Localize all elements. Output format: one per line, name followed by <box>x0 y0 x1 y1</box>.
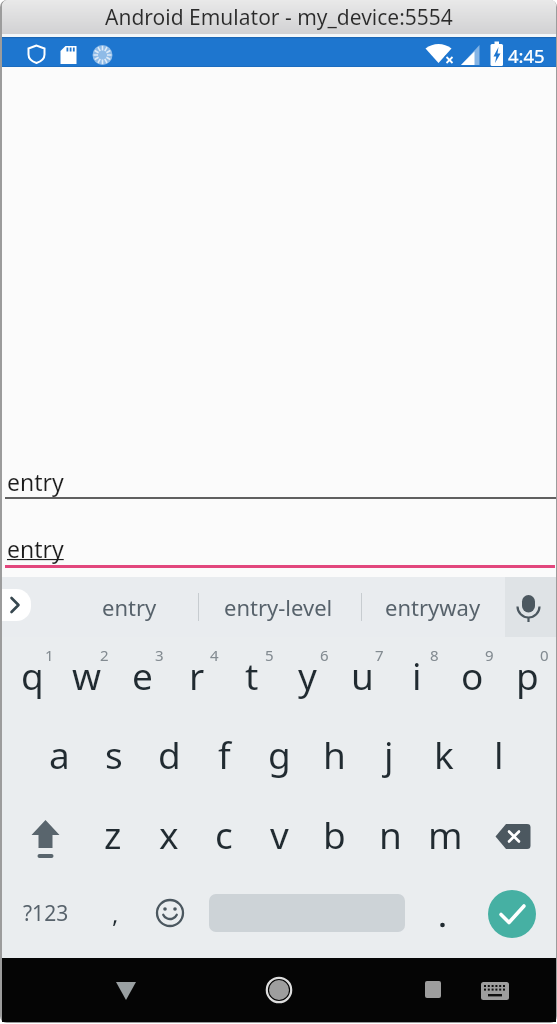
button[interactable]: e <box>115 637 169 713</box>
button[interactable]: m <box>418 796 472 872</box>
staticText: entry <box>7 533 64 564</box>
button[interactable]: k <box>417 716 471 792</box>
button[interactable]: b <box>307 796 361 872</box>
staticText: x <box>159 809 179 859</box>
button[interactable] <box>485 800 541 876</box>
staticText: s <box>105 729 123 779</box>
staticText: 3 <box>155 645 164 665</box>
staticText: l <box>494 729 504 779</box>
staticText: a <box>49 729 70 779</box>
staticText: f <box>218 729 231 779</box>
button[interactable] <box>259 970 299 1010</box>
button[interactable]: entry-level <box>198 583 358 631</box>
button[interactable]: c <box>197 796 251 872</box>
button[interactable]: d <box>142 716 196 792</box>
staticText: v <box>270 809 289 859</box>
button[interactable]: u <box>335 637 389 713</box>
button[interactable]: w <box>60 637 114 713</box>
button[interactable]: t <box>225 637 279 713</box>
staticText: 4:45 <box>508 43 545 68</box>
button[interactable] <box>413 970 453 1010</box>
staticText: 8 <box>430 645 439 665</box>
staticText: y <box>298 650 317 700</box>
staticText: t <box>245 650 259 700</box>
staticText: 7 <box>375 645 384 665</box>
staticText: h <box>323 729 346 779</box>
button[interactable]: z <box>86 796 140 872</box>
staticText: 0 <box>540 645 549 665</box>
button[interactable]: x <box>142 796 196 872</box>
button[interactable] <box>475 970 515 1010</box>
button[interactable]: , <box>95 893 135 933</box>
staticText: entry <box>7 466 64 497</box>
button[interactable]: g <box>252 716 306 792</box>
button[interactable]: v <box>252 796 306 872</box>
staticText: z <box>104 809 122 859</box>
staticText: 6 <box>320 645 329 665</box>
button[interactable]: l <box>472 716 526 792</box>
staticText: 2 <box>100 645 109 665</box>
button[interactable]: q <box>5 637 59 713</box>
staticText: g <box>268 729 291 779</box>
button[interactable]: r <box>170 637 224 713</box>
button[interactable]: s <box>87 716 141 792</box>
staticText: q <box>21 650 44 700</box>
staticText: w <box>72 650 102 700</box>
staticText: d <box>158 729 181 779</box>
button[interactable] <box>2 589 31 621</box>
button[interactable]: h <box>307 716 361 792</box>
staticText: e <box>132 650 153 700</box>
staticText: j <box>384 729 394 779</box>
button[interactable] <box>18 800 74 876</box>
button[interactable]: ?123 <box>11 893 81 933</box>
staticText: n <box>379 809 402 859</box>
button[interactable]: o <box>445 637 499 713</box>
staticText: 4 <box>210 645 219 665</box>
staticText: o <box>461 650 484 700</box>
button[interactable] <box>150 893 190 933</box>
staticText: b <box>323 809 346 859</box>
staticText: entry-level <box>224 592 333 622</box>
staticText: ?123 <box>23 899 69 928</box>
staticText: p <box>516 650 539 700</box>
button[interactable]: n <box>363 796 417 872</box>
button[interactable] <box>106 970 146 1010</box>
staticText: entryway <box>385 592 481 622</box>
button[interactable] <box>488 890 536 938</box>
staticText: , <box>112 897 119 930</box>
staticText: Android Emulator - my_device:5554 <box>105 3 453 32</box>
staticText: k <box>434 729 454 779</box>
staticText: r <box>189 650 205 700</box>
staticText: m <box>428 809 463 859</box>
button[interactable]: entry <box>49 583 209 631</box>
staticText: entry <box>102 592 157 622</box>
staticText: 9 <box>485 645 494 665</box>
button[interactable]: j <box>362 716 416 792</box>
button[interactable] <box>505 577 556 637</box>
staticText: c <box>215 809 233 859</box>
button[interactable]: p <box>500 637 554 713</box>
staticText: i <box>412 650 422 700</box>
button[interactable]: f <box>197 716 251 792</box>
button[interactable]: y <box>280 637 334 713</box>
button[interactable]: entryway <box>353 583 513 631</box>
button[interactable]: i <box>390 637 444 713</box>
staticText: 1 <box>45 645 54 665</box>
button[interactable]: a <box>32 716 86 792</box>
staticText: 5 <box>265 645 274 665</box>
staticText: u <box>351 650 374 700</box>
